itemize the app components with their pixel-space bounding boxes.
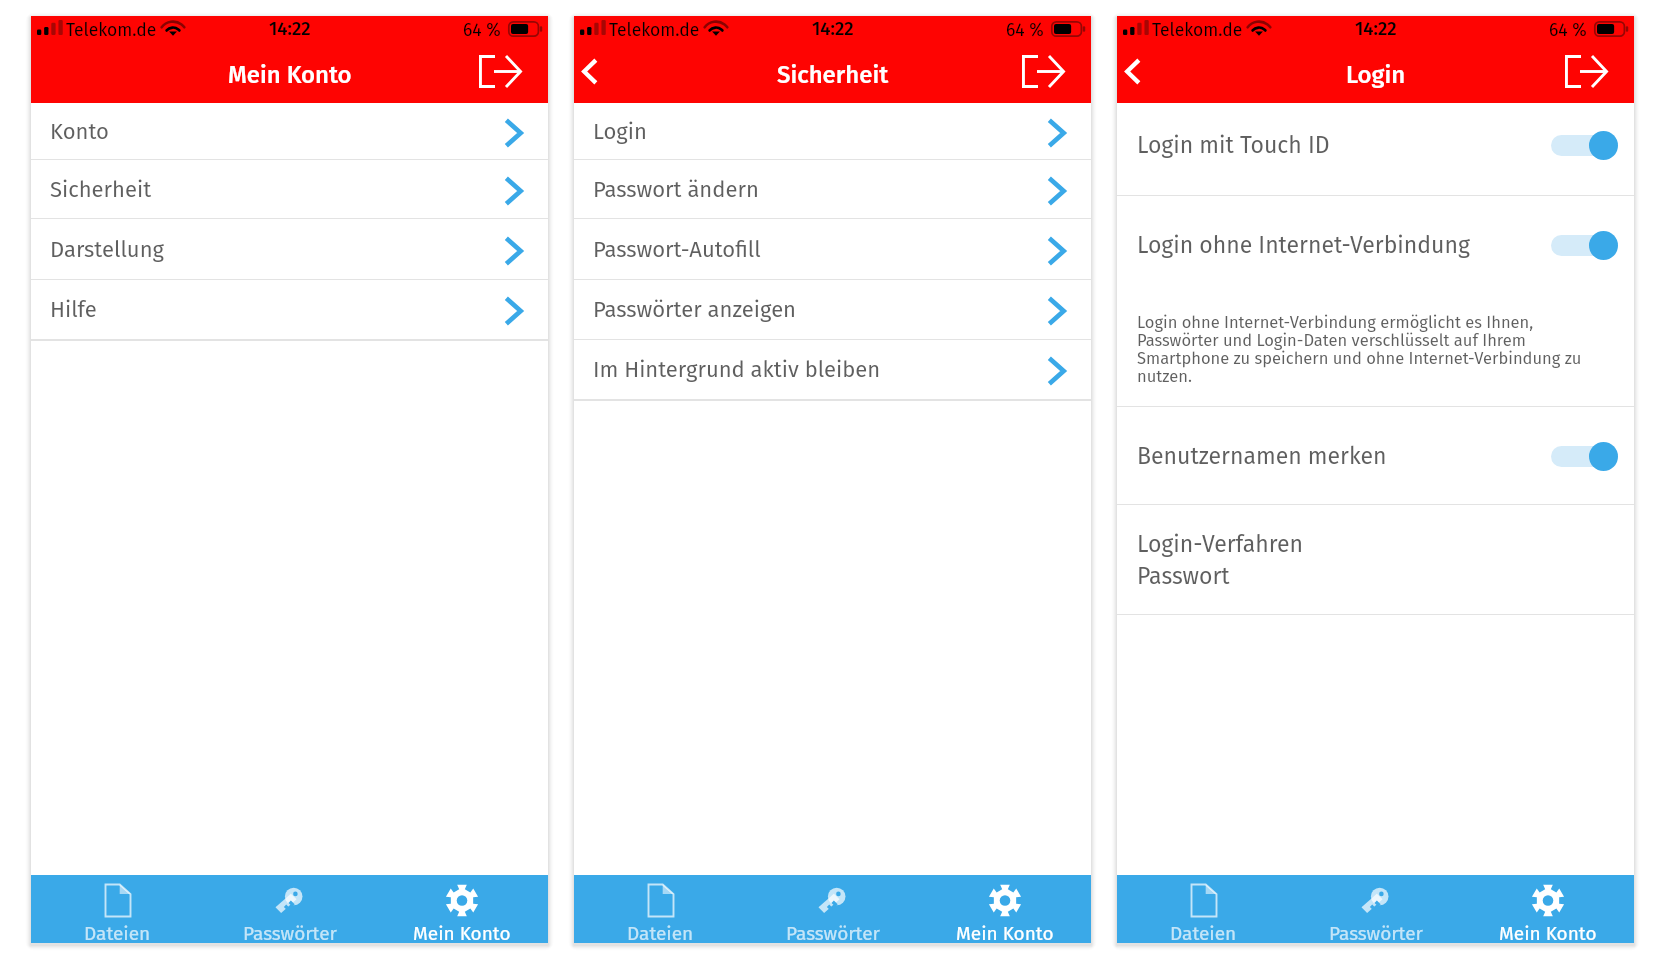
button[interactable]: Im Hintergrund aktiv bleiben bbox=[574, 340, 1091, 400]
button[interactable]: Passwörter bbox=[747, 875, 919, 943]
staticText: Benutzernamen merken bbox=[1137, 442, 1387, 470]
button[interactable]: Mein Konto bbox=[1462, 875, 1634, 943]
button[interactable]: Dateien bbox=[1117, 875, 1290, 943]
staticText: Sicherheit bbox=[777, 61, 889, 90]
button[interactable]: Passwort ändern bbox=[574, 160, 1091, 219]
staticText: 14:22 bbox=[269, 18, 311, 40]
staticText: Passwörter bbox=[786, 922, 880, 945]
button[interactable]: Mein Konto bbox=[919, 875, 1091, 943]
staticText: Hilfe bbox=[50, 296, 97, 322]
staticText: 64 % bbox=[1549, 20, 1587, 41]
staticText: Passwörter bbox=[243, 922, 337, 945]
staticText: Login ohne Internet-Verbindung ermöglich… bbox=[1137, 313, 1597, 386]
button[interactable]: Logout bbox=[1017, 45, 1069, 97]
button[interactable]: Passwörter bbox=[204, 875, 376, 943]
staticText: Im Hintergrund aktiv bleiben bbox=[593, 356, 881, 382]
button[interactable]: Dateien bbox=[574, 875, 747, 943]
staticText: Login ohne Internet-Verbindung bbox=[1137, 231, 1470, 259]
button[interactable]: Back bbox=[1117, 57, 1157, 103]
staticText: Dateien bbox=[84, 922, 151, 945]
button[interactable]: Back bbox=[574, 57, 614, 103]
staticText: Dateien bbox=[1170, 922, 1237, 945]
staticText: Telekom.de bbox=[66, 20, 157, 41]
staticText: Darstellung bbox=[50, 236, 164, 262]
staticText: Passwort-Autofill bbox=[593, 236, 761, 262]
button[interactable]: Passwort-Autofill bbox=[574, 220, 1091, 280]
button[interactable]: Passwörter bbox=[1290, 875, 1462, 943]
staticText: Mein Konto bbox=[228, 61, 352, 90]
button[interactable]: Login mit Touch ID bbox=[1117, 123, 1634, 169]
staticText: Telekom.de bbox=[609, 20, 700, 41]
staticText: Sicherheit bbox=[50, 176, 152, 202]
staticText: Telekom.de bbox=[1152, 20, 1243, 41]
staticText: 14:22 bbox=[812, 18, 854, 40]
staticText: Dateien bbox=[627, 922, 694, 945]
button[interactable]: Konto bbox=[31, 103, 548, 160]
staticText: Passwörter bbox=[1329, 922, 1423, 945]
staticText: Login bbox=[1346, 61, 1406, 90]
staticText: Login mit Touch ID bbox=[1137, 131, 1330, 159]
button[interactable]: Benutzernamen merken bbox=[1117, 434, 1634, 480]
staticText: Login-Verfahren Passwort bbox=[1137, 530, 1303, 590]
staticText: Passwort ändern bbox=[593, 176, 759, 202]
staticText: Login bbox=[593, 118, 647, 144]
staticText: Mein Konto bbox=[956, 922, 1054, 945]
staticText: Mein Konto bbox=[1499, 922, 1597, 945]
button[interactable]: Login bbox=[574, 103, 1091, 160]
button[interactable]: Dateien bbox=[31, 875, 204, 943]
button[interactable]: Mein Konto bbox=[376, 875, 548, 943]
button[interactable]: Passwörter anzeigen bbox=[574, 280, 1091, 340]
button[interactable]: Logout bbox=[474, 45, 526, 97]
staticText: Konto bbox=[50, 118, 109, 144]
staticText: 14:22 bbox=[1355, 18, 1397, 40]
button[interactable]: Hilfe bbox=[31, 280, 548, 340]
button[interactable]: Logout bbox=[1560, 45, 1612, 97]
staticText: Passwörter anzeigen bbox=[593, 296, 797, 322]
button[interactable]: Sicherheit bbox=[31, 160, 548, 219]
button[interactable]: Login ohne Internet-Verbindung bbox=[1117, 223, 1634, 269]
staticText: 64 % bbox=[1006, 20, 1044, 41]
staticText: Mein Konto bbox=[413, 922, 511, 945]
staticText: 64 % bbox=[463, 20, 501, 41]
button[interactable]: Darstellung bbox=[31, 220, 548, 280]
